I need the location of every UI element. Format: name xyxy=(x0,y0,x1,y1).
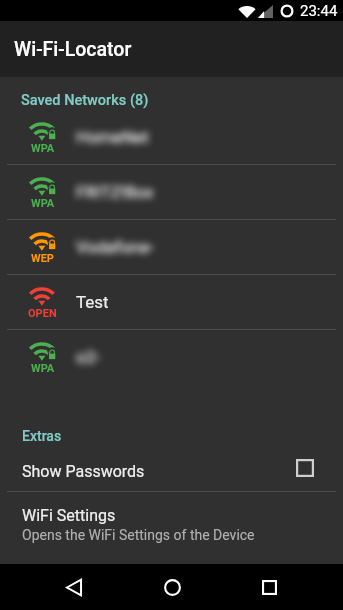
staticText: WiFi Settings xyxy=(22,506,116,525)
staticText: Test xyxy=(76,292,109,312)
button[interactable]: WEP xyxy=(0,220,343,274)
button[interactable]: WPA xyxy=(0,165,343,219)
button[interactable]: Home xyxy=(149,564,195,610)
button[interactable]: Show Passwords xyxy=(0,452,343,491)
staticText: WEP xyxy=(31,252,54,265)
button[interactable]: Recent apps xyxy=(246,564,292,610)
staticText: 23:44 xyxy=(300,2,338,20)
button[interactable]: OPEN xyxy=(0,275,343,329)
button[interactable]: WPA xyxy=(0,330,343,384)
button[interactable]: Back xyxy=(51,564,97,610)
staticText: Show Passwords xyxy=(22,462,145,481)
staticText: o2-W xyxy=(76,347,107,367)
button[interactable]: WiFi Settings xyxy=(0,492,343,550)
staticText: WPA xyxy=(31,197,55,210)
staticText: FRITZ!Box 7490 XY xyxy=(76,182,167,202)
staticText: HomeNet24 xyxy=(76,127,153,147)
staticText: WPA xyxy=(31,142,55,155)
staticText: WPA xyxy=(31,362,55,375)
staticText: Extras xyxy=(22,428,62,444)
staticText: Opens the WiFi Settings of the Device xyxy=(22,527,255,543)
button[interactable]: WPA xyxy=(0,110,343,164)
staticText: Vodafone-1A2 xyxy=(76,237,155,257)
staticText: Saved Networks (8) xyxy=(21,92,149,109)
staticText: OPEN xyxy=(28,307,57,320)
staticText: Wi-Fi-Locator xyxy=(14,38,132,61)
